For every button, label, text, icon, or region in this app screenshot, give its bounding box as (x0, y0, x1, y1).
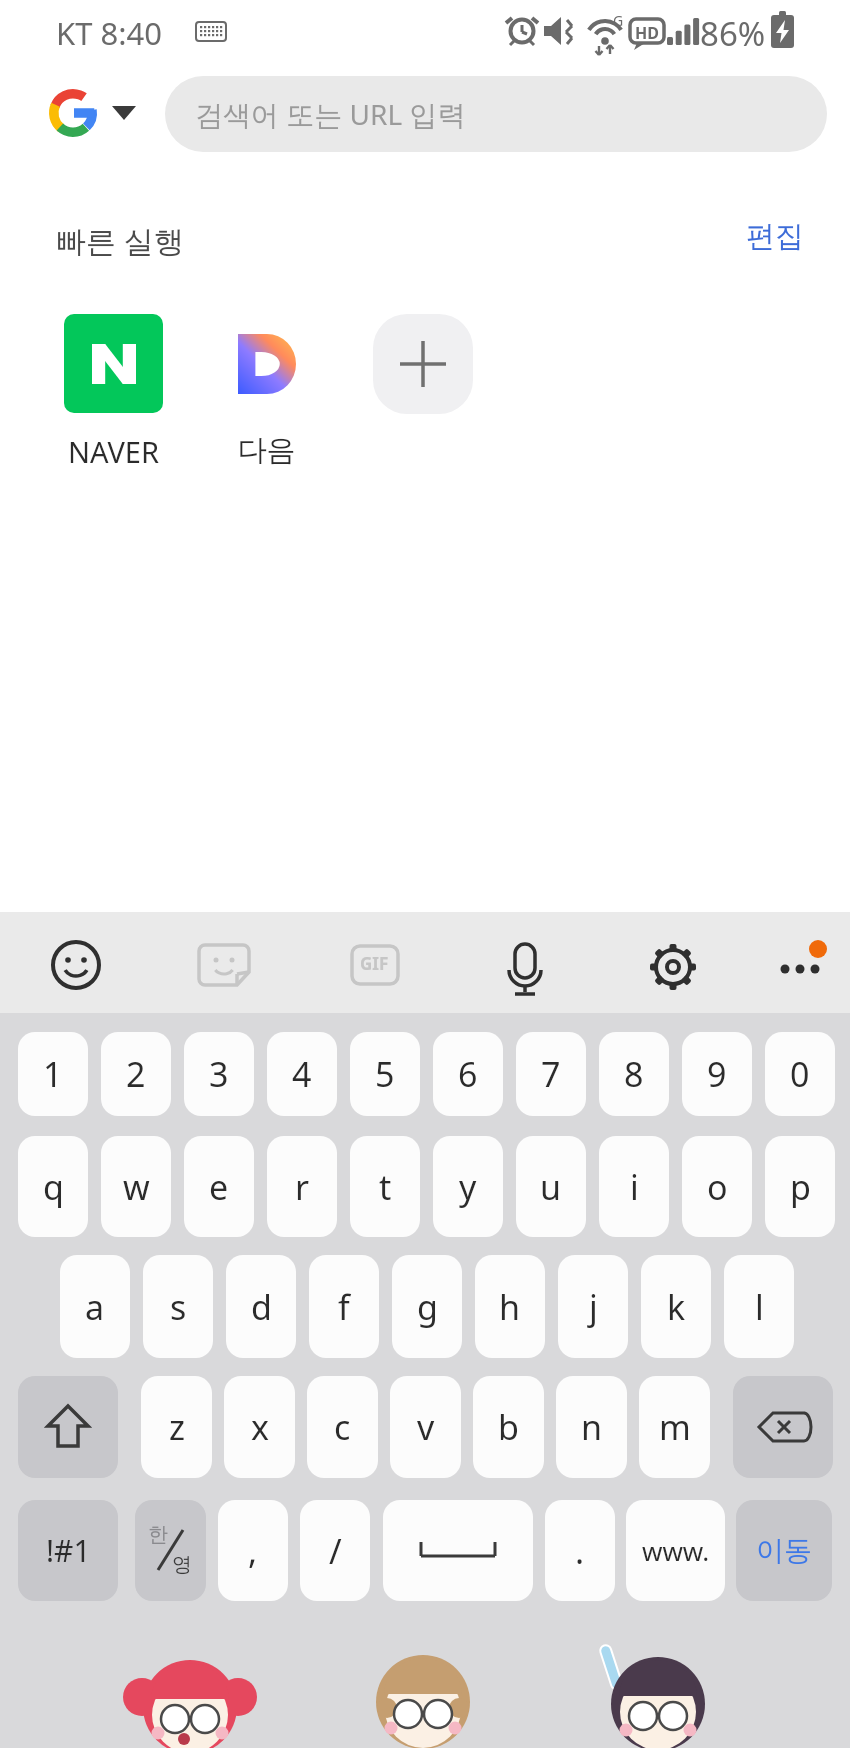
button[interactable]: 5 (350, 1032, 420, 1116)
button[interactable]: o (682, 1136, 752, 1237)
staticText: r (295, 1164, 310, 1210)
staticText: 영 (172, 1552, 192, 1577)
staticText: www. (642, 1533, 710, 1568)
staticText: z (169, 1404, 185, 1450)
button[interactable]: / (300, 1500, 370, 1601)
staticText: 빠른 실행 (56, 220, 184, 261)
staticText: 86% (700, 11, 766, 56)
button[interactable]: v (390, 1376, 461, 1478)
staticText: 다음 (217, 432, 316, 469)
button[interactable]: p (765, 1136, 835, 1237)
button[interactable]: b (473, 1376, 544, 1478)
button[interactable]: !#1 (18, 1500, 118, 1601)
button[interactable]: r (267, 1136, 337, 1237)
staticText: 0 (790, 1051, 810, 1097)
button[interactable] (64, 314, 163, 413)
button[interactable] (760, 925, 840, 1001)
button[interactable]: 0 (765, 1032, 835, 1116)
button[interactable] (633, 925, 713, 1001)
button[interactable]: m (639, 1376, 710, 1478)
staticText: !#1 (46, 1530, 91, 1571)
button[interactable]: 검색어 또는 URL 입력 (165, 76, 827, 152)
staticText: 한 (148, 1522, 168, 1547)
staticText: 6 (458, 1051, 478, 1097)
button[interactable] (0, 82, 160, 146)
staticText: a (85, 1284, 105, 1330)
staticText: 1 (43, 1051, 63, 1097)
button[interactable]: 1 (18, 1032, 88, 1116)
staticText: l (755, 1284, 764, 1330)
staticText: h (499, 1284, 521, 1330)
button[interactable]: u (516, 1136, 586, 1237)
button[interactable] (135, 1500, 206, 1601)
staticText: 이동 (756, 1533, 812, 1568)
staticText: 4 (292, 1051, 312, 1097)
staticText: . (575, 1528, 585, 1574)
staticText: o (707, 1164, 728, 1210)
button[interactable]: 3 (184, 1032, 254, 1116)
button[interactable] (36, 925, 116, 1001)
button[interactable] (18, 1376, 118, 1478)
button[interactable] (383, 1500, 533, 1601)
staticText: , (248, 1528, 258, 1574)
button[interactable]: k (641, 1255, 711, 1358)
staticText: GIF (360, 952, 389, 975)
button[interactable] (373, 314, 473, 414)
button[interactable]: 4 (267, 1032, 337, 1116)
staticText: 검색어 또는 URL 입력 (195, 95, 466, 133)
button[interactable]: e (184, 1136, 254, 1237)
button[interactable]: w (101, 1136, 171, 1237)
button[interactable]: . (545, 1500, 615, 1601)
staticText: x (251, 1404, 269, 1450)
button[interactable]: , (218, 1500, 288, 1601)
button[interactable]: t (350, 1136, 420, 1237)
button[interactable]: x (224, 1376, 295, 1478)
button[interactable]: q (18, 1136, 88, 1237)
button[interactable]: www. (626, 1500, 725, 1601)
button[interactable]: i (599, 1136, 669, 1237)
button[interactable]: l (724, 1255, 794, 1358)
staticText: / (329, 1528, 342, 1574)
button[interactable]: 8 (599, 1032, 669, 1116)
button[interactable] (335, 925, 415, 1001)
staticText: g (417, 1284, 438, 1330)
staticText: m (659, 1404, 691, 1450)
staticText: n (581, 1404, 603, 1450)
button[interactable] (185, 925, 265, 1001)
button[interactable] (485, 925, 565, 1001)
button[interactable]: g (392, 1255, 462, 1358)
staticText: y (459, 1164, 477, 1210)
staticText: t (379, 1164, 392, 1210)
staticText: e (209, 1164, 229, 1210)
staticText: q (43, 1164, 64, 1210)
button[interactable]: d (226, 1255, 296, 1358)
staticText: 5 (375, 1051, 395, 1097)
button[interactable]: j (558, 1255, 628, 1358)
staticText: 편집 (746, 218, 804, 255)
button[interactable]: n (556, 1376, 627, 1478)
button[interactable]: h (475, 1255, 545, 1358)
staticText: KT 8:40 (56, 12, 162, 54)
button[interactable]: 이동 (736, 1500, 832, 1601)
button[interactable]: 9 (682, 1032, 752, 1116)
button[interactable]: 편집 (740, 214, 810, 258)
button[interactable]: f (309, 1255, 379, 1358)
staticText: u (540, 1164, 562, 1210)
button[interactable]: z (141, 1376, 212, 1478)
button[interactable] (733, 1376, 833, 1478)
button[interactable]: s (143, 1255, 213, 1358)
staticText: f (338, 1284, 350, 1330)
button[interactable]: 7 (516, 1032, 586, 1116)
button[interactable] (217, 314, 316, 413)
staticText: d (251, 1284, 272, 1330)
button[interactable]: c (307, 1376, 378, 1478)
staticText: 7 (541, 1051, 561, 1097)
button[interactable]: 6 (433, 1032, 503, 1116)
button[interactable]: y (433, 1136, 503, 1237)
staticText: k (667, 1284, 686, 1330)
button[interactable]: 2 (101, 1032, 171, 1116)
button[interactable]: a (60, 1255, 130, 1358)
staticText: 9 (707, 1051, 727, 1097)
staticText: p (790, 1164, 811, 1210)
staticText: 2 (126, 1051, 146, 1097)
